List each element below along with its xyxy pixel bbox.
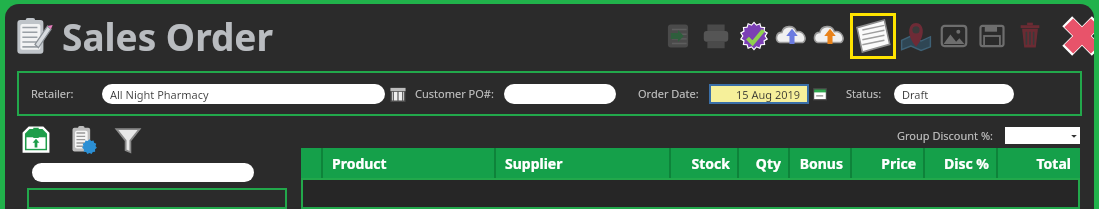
- button[interactable]: [32, 163, 254, 182]
- button[interactable]: Filter: [111, 123, 145, 157]
- button[interactable]: Order notes: [850, 13, 896, 59]
- staticText: Group Discount %:: [897, 128, 993, 143]
- button[interactable]: Duplicate order: [660, 18, 696, 54]
- staticText: Bonus: [799, 154, 843, 173]
- staticText: 15 Aug 2019: [736, 87, 801, 102]
- button[interactable]: Print: [698, 18, 734, 54]
- button[interactable]: Delete: [1012, 18, 1048, 54]
- staticText: Draft: [902, 87, 929, 102]
- button[interactable]: Stock: [671, 148, 739, 178]
- staticText: Supplier: [505, 154, 563, 173]
- button[interactable]: Supplier: [496, 148, 671, 178]
- staticText: Customer PO#:: [415, 86, 494, 101]
- button[interactable]: Close: [1060, 14, 1094, 58]
- button[interactable]: Product: [323, 148, 496, 178]
- staticText: Status:: [846, 86, 882, 101]
- button[interactable]: Apply discount: [736, 18, 772, 54]
- button[interactable]: Draft: [894, 84, 1014, 104]
- staticText: Qty: [755, 154, 781, 173]
- staticText: Product: [332, 154, 387, 173]
- button[interactable]: Stock: [19, 123, 53, 157]
- button[interactable]: Group discount: [1005, 127, 1080, 144]
- button[interactable]: Sale items: [65, 123, 99, 157]
- staticText: Stock: [691, 154, 730, 173]
- staticText: Total: [1036, 154, 1071, 173]
- button[interactable]: Price: [852, 148, 925, 178]
- button[interactable]: [504, 84, 616, 104]
- staticText: All Night Pharmacy: [110, 87, 209, 102]
- staticText: Disc %: [944, 154, 989, 173]
- button[interactable]: Disc %: [925, 148, 998, 178]
- staticText: Order Date:: [638, 86, 699, 101]
- button[interactable]: Attach image: [936, 18, 972, 54]
- button[interactable]: Download: [812, 18, 848, 54]
- button[interactable]: 15 Aug 2019: [711, 86, 807, 102]
- button[interactable]: Upload: [774, 18, 810, 54]
- button[interactable]: Save: [974, 18, 1010, 54]
- staticText: Sales Order: [62, 11, 273, 61]
- button[interactable]: Location: [898, 18, 934, 54]
- button[interactable]: [301, 148, 323, 178]
- staticText: Retailer:: [31, 86, 74, 101]
- staticText: Price: [881, 154, 916, 173]
- button[interactable]: Qty: [739, 148, 790, 178]
- button[interactable]: Total: [998, 148, 1080, 178]
- button[interactable]: Bonus: [790, 148, 852, 178]
- button[interactable]: All Night Pharmacy: [102, 84, 385, 104]
